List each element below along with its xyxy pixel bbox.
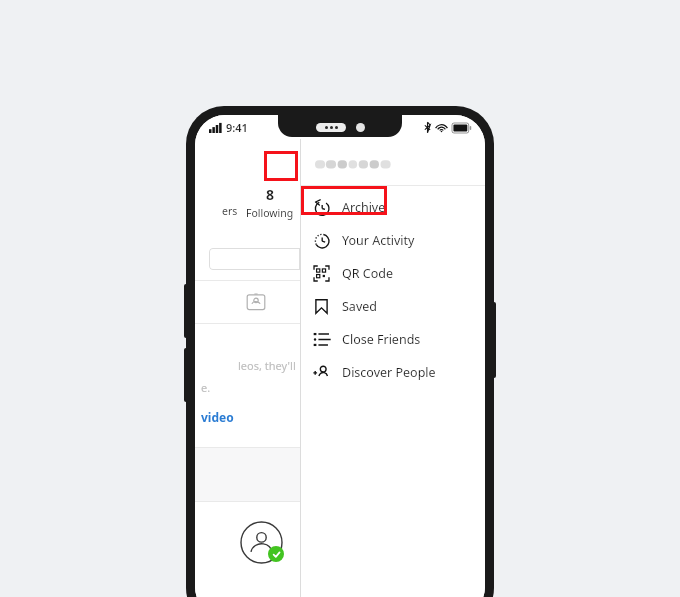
staticText: leos, they'll bbox=[238, 358, 296, 373]
staticText: QR Code bbox=[342, 265, 393, 282]
button[interactable]: Your Activity bbox=[301, 224, 485, 257]
staticText: Close Friends bbox=[342, 331, 421, 348]
staticText: Archive bbox=[342, 199, 386, 216]
staticText: video bbox=[201, 409, 300, 425]
button[interactable]: QR Code bbox=[301, 257, 485, 290]
button[interactable]: Archive bbox=[301, 191, 485, 224]
staticText: Following bbox=[246, 206, 294, 220]
staticText: e. bbox=[201, 380, 300, 395]
staticText: ers bbox=[222, 204, 238, 218]
staticText: Your Activity bbox=[342, 232, 415, 249]
button[interactable]: Close Friends bbox=[301, 323, 485, 356]
button[interactable] bbox=[209, 248, 300, 270]
staticText: 8 bbox=[266, 185, 275, 204]
staticText: Saved bbox=[342, 298, 377, 315]
button[interactable]: Discover People bbox=[301, 356, 485, 389]
staticText: Discover People bbox=[342, 364, 436, 381]
button[interactable]: Saved bbox=[301, 290, 485, 323]
staticText: 9:41 bbox=[226, 120, 248, 135]
